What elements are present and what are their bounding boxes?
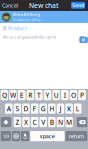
button[interactable]: H [48, 103, 56, 114]
staticText: Q [2, 91, 7, 100]
button[interactable]: Send [71, 2, 85, 9]
button[interactable]: R [27, 90, 34, 100]
staticText: P [80, 91, 84, 100]
button[interactable]: M [65, 117, 73, 127]
button[interactable]: Cancel [2, 0, 24, 11]
staticText: G [41, 104, 46, 113]
button[interactable]: J [57, 103, 64, 114]
button[interactable]: 123 [1, 131, 11, 141]
button[interactable]: Q [1, 90, 8, 100]
staticText: R [28, 91, 32, 100]
button[interactable]: Delete [77, 117, 87, 127]
button[interactable]: B [48, 117, 56, 127]
button[interactable]: P [78, 90, 86, 100]
button[interactable]: Y [44, 90, 51, 100]
button[interactable]: L [74, 103, 81, 114]
button[interactable]: P [78, 90, 86, 100]
button[interactable]: X [22, 117, 30, 127]
button[interactable]: U [52, 90, 60, 100]
staticText: M [66, 118, 72, 127]
staticText: F [33, 104, 37, 113]
button[interactable]: X [22, 117, 30, 127]
staticText: O [71, 91, 76, 100]
staticText: C [33, 118, 37, 127]
staticText: Grabbing coffee [13, 17, 41, 22]
button[interactable]: G [39, 103, 47, 114]
staticText: E [20, 91, 24, 100]
button[interactable]: K [65, 103, 73, 114]
button[interactable]: I [61, 90, 68, 100]
button[interactable]: T [35, 90, 43, 100]
button[interactable]: G [39, 103, 47, 114]
staticText: M [66, 118, 72, 127]
button[interactable]: Shift [1, 117, 11, 127]
button[interactable]: Delete [77, 117, 87, 127]
staticText: Product [8, 25, 27, 32]
button[interactable]: D [22, 103, 30, 114]
button[interactable]: L [74, 103, 81, 114]
button[interactable]: S [14, 103, 21, 114]
button[interactable]: Next keyboard [12, 131, 20, 141]
button[interactable]: U [52, 90, 60, 100]
button[interactable]: return [65, 131, 87, 141]
button[interactable]: A [5, 103, 12, 114]
button[interactable]: V [39, 117, 47, 127]
button[interactable]: W [9, 90, 17, 100]
staticText: U [54, 91, 59, 100]
button[interactable]: O [70, 90, 77, 100]
button[interactable]: return [65, 131, 87, 141]
button[interactable]: Y [44, 90, 51, 100]
button[interactable]: E [18, 90, 25, 100]
button[interactable]: N [57, 117, 64, 127]
button[interactable]: Q [1, 90, 8, 100]
staticText: V [41, 118, 45, 127]
button[interactable]: B [48, 117, 56, 127]
staticText: return [69, 133, 84, 140]
button[interactable]: Camera [79, 35, 88, 43]
button[interactable]: J [57, 103, 64, 114]
button[interactable]: Dictate [21, 131, 29, 141]
staticText: U [54, 91, 59, 100]
button[interactable]: Dictate [21, 131, 29, 141]
button[interactable]: O [70, 90, 77, 100]
staticText: E [20, 91, 24, 100]
button[interactable]: F [31, 103, 38, 114]
staticText: L [76, 104, 80, 113]
staticText: Z [15, 118, 19, 127]
staticText: # [2, 24, 6, 33]
staticText: H [49, 104, 54, 113]
button[interactable]: F [31, 103, 38, 114]
staticText: K [67, 104, 71, 113]
button[interactable]: W [9, 90, 17, 100]
staticText: J [59, 104, 61, 113]
button[interactable]: T [35, 90, 43, 100]
button[interactable]: V [39, 117, 47, 127]
button[interactable]: R [27, 90, 34, 100]
button[interactable]: Camera [79, 35, 88, 43]
button[interactable]: Z [14, 117, 21, 127]
staticText: X [24, 118, 28, 127]
button[interactable]: space [30, 131, 65, 141]
button[interactable]: S [14, 103, 21, 114]
button[interactable]: K [65, 103, 73, 114]
button[interactable]: Shift [1, 117, 11, 127]
button[interactable]: M [65, 117, 73, 127]
button[interactable]: N [57, 117, 64, 127]
staticText: W [10, 91, 16, 100]
button[interactable]: A [5, 103, 12, 114]
button[interactable]: E [18, 90, 25, 100]
staticText: Y [45, 91, 49, 100]
staticText: I [64, 91, 66, 100]
staticText: Q [2, 91, 7, 100]
staticText: New chat [29, 1, 59, 10]
button[interactable]: I [61, 90, 68, 100]
button[interactable]: Z [14, 117, 21, 127]
button[interactable]: C [31, 117, 38, 127]
button[interactable]: Next keyboard [12, 131, 20, 141]
button[interactable]: C [31, 117, 38, 127]
button[interactable]: D [22, 103, 30, 114]
button[interactable]: space [30, 131, 65, 141]
button[interactable]: H [48, 103, 56, 114]
staticText: 123 [3, 133, 9, 139]
button[interactable]: 123 [1, 131, 11, 141]
